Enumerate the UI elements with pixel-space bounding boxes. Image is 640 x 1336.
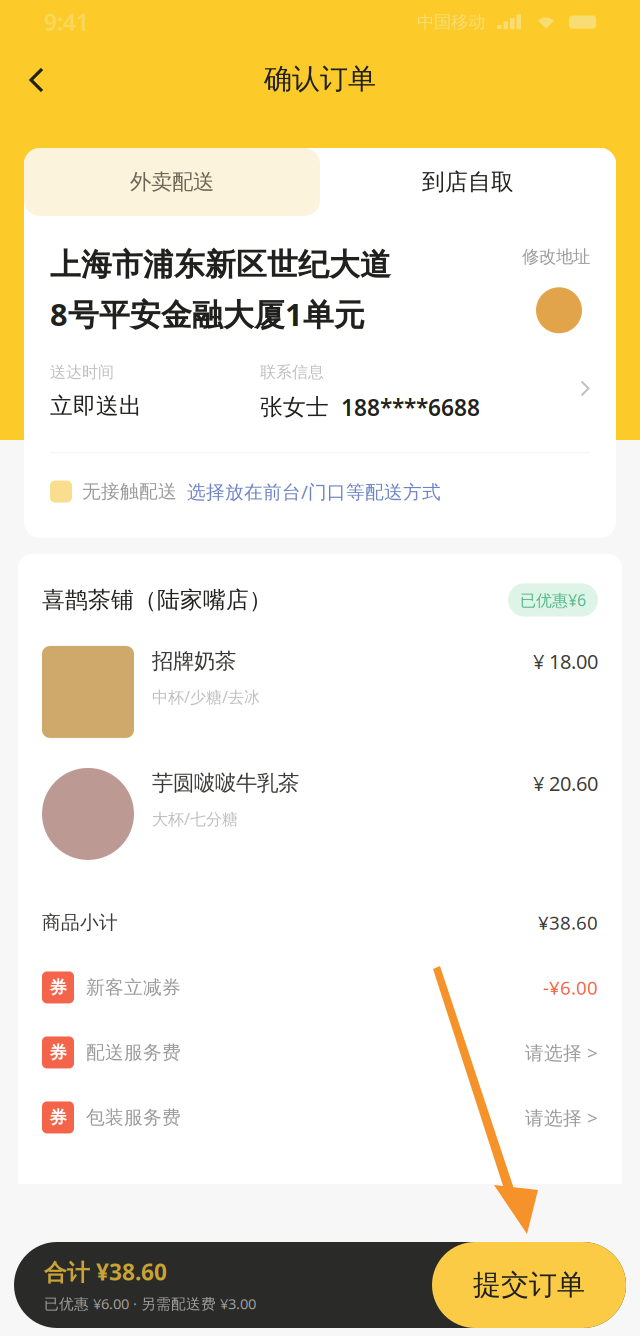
staticText: 外卖配送: [130, 169, 214, 195]
staticText: -¥6.00: [543, 975, 598, 1000]
staticText: 送达时间: [50, 362, 114, 382]
staticText: 请选择 >: [525, 1105, 598, 1130]
button[interactable]: 上海市浦东新区世纪大道: [50, 216, 590, 334]
staticText: 券: [49, 1107, 66, 1128]
staticText: 立即送出: [50, 392, 142, 420]
staticText: 大杯/七分糖: [152, 808, 238, 829]
staticText: 已优惠 ¥6.00 · 另需配送费 ¥3.00: [44, 1294, 256, 1313]
staticText: 到店自取: [422, 168, 514, 196]
staticText: 中国移动: [417, 11, 485, 33]
staticText: 8号平安金融大厦1单元: [50, 294, 365, 334]
staticText: 芋圆啵啵牛乳茶: [152, 770, 299, 796]
button[interactable]: 提交订单: [432, 1242, 626, 1328]
staticText: 9:41: [44, 7, 89, 37]
button[interactable]: 无接触配送: [50, 453, 590, 538]
staticText: 商品小计: [42, 911, 118, 934]
button[interactable]: 商品小计: [18, 890, 622, 955]
staticText: 喜鹊茶铺（陆家嘴店）: [42, 586, 272, 614]
staticText: 合计 ¥38.60: [44, 1257, 167, 1287]
button[interactable]: 送达时间: [50, 334, 590, 422]
button[interactable]: 到店自取: [320, 148, 616, 216]
staticText: ¥38.60: [538, 910, 598, 935]
button[interactable]: 券: [18, 955, 622, 1020]
staticText: 联系信息: [260, 362, 324, 382]
staticText: 配送服务费: [86, 1041, 181, 1064]
staticText: 无接触配送: [82, 480, 177, 503]
staticText: 招牌奶茶: [152, 648, 236, 674]
staticText: 修改地址: [522, 246, 590, 267]
button[interactable]: 券: [18, 1020, 622, 1085]
staticText: ¥ 20.60: [533, 770, 598, 796]
staticText: 新客立减券: [86, 976, 181, 999]
button[interactable]: 芋圆啵啵牛乳茶: [18, 768, 622, 890]
staticText: 券: [49, 1042, 66, 1063]
staticText: 张女士: [260, 393, 329, 421]
button[interactable]: 招牌奶茶: [18, 646, 622, 768]
staticText: 请选择 >: [525, 1040, 598, 1065]
staticText: 选择放在前台/门口等配送方式: [187, 479, 441, 504]
button[interactable]: 券: [18, 1085, 622, 1150]
staticText: 上海市浦东新区世纪大道: [50, 246, 391, 284]
staticText: 券: [49, 977, 66, 998]
button[interactable]: 外卖配送: [24, 148, 320, 216]
staticText: 188****6688: [341, 392, 480, 422]
staticText: 确认订单: [264, 62, 376, 96]
staticText: 提交订单: [473, 1268, 585, 1302]
button[interactable]: 喜鹊茶铺（陆家嘴店）: [18, 554, 622, 646]
staticText: ¥ 18.00: [533, 648, 598, 674]
staticText: 包装服务费: [86, 1106, 181, 1129]
staticText: 中杯/少糖/去冰: [152, 686, 260, 707]
staticText: 已优惠¥6: [520, 589, 586, 610]
button[interactable]: 返回: [0, 37, 74, 109]
